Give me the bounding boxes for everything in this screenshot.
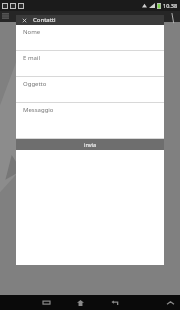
button[interactable]: Back xyxy=(97,295,131,310)
staticText: Oggetto xyxy=(23,80,47,88)
button[interactable]: Home xyxy=(63,295,97,310)
staticText: 10.38 xyxy=(163,2,178,9)
staticText: E mail xyxy=(23,54,40,62)
button[interactable]: Show menu xyxy=(160,295,180,310)
button[interactable]: Oggetto xyxy=(16,77,164,103)
button[interactable]: E mail xyxy=(16,51,164,77)
staticText: Contatti xyxy=(33,16,56,24)
staticText: Messaggio xyxy=(23,106,54,114)
button[interactable]: Messaggio xyxy=(16,103,164,139)
button[interactable]: Recent apps xyxy=(29,295,63,310)
button[interactable]: invia xyxy=(16,139,164,150)
staticText: invia xyxy=(84,141,97,148)
button[interactable]: Close xyxy=(16,15,164,25)
button[interactable]: Close xyxy=(20,16,28,24)
staticText: Nome xyxy=(23,28,41,36)
button[interactable]: Nome xyxy=(16,25,164,51)
